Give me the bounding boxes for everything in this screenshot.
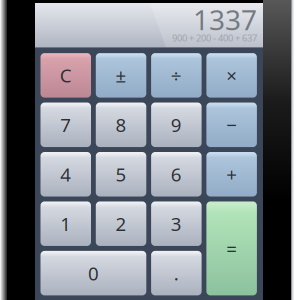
staticText: C	[60, 63, 72, 88]
button[interactable]: +	[206, 152, 257, 196]
staticText: .	[174, 261, 179, 286]
button[interactable]: 1	[40, 201, 91, 246]
button[interactable]: 8	[96, 103, 146, 147]
staticText: 5	[115, 162, 126, 187]
button[interactable]: 2	[96, 201, 146, 246]
button[interactable]: 6	[151, 152, 202, 196]
staticText: 900 + 200 - 400 + 637	[172, 32, 257, 44]
staticText: −	[226, 112, 237, 137]
staticText: 1337	[193, 1, 257, 38]
button[interactable]: ±	[96, 53, 146, 98]
staticText: 0	[88, 261, 99, 286]
button[interactable]: ×	[206, 53, 257, 98]
button[interactable]: =	[206, 201, 257, 295]
staticText: +	[226, 162, 237, 187]
button[interactable]: −	[206, 103, 257, 147]
staticText: 4	[60, 162, 71, 187]
staticText: 2	[115, 211, 126, 236]
button[interactable]: 5	[96, 152, 146, 196]
staticText: 3	[171, 211, 182, 236]
button[interactable]: C	[40, 53, 91, 98]
staticText: 9	[171, 112, 182, 137]
button[interactable]: 4	[40, 152, 91, 196]
staticText: 1	[60, 211, 71, 236]
button[interactable]: ÷	[151, 53, 202, 98]
button[interactable]: 3	[151, 201, 202, 246]
staticText: 7	[60, 112, 71, 137]
button[interactable]: .	[151, 251, 202, 295]
button[interactable]: 0	[40, 251, 146, 295]
staticText: ÷	[171, 63, 182, 88]
staticText: ±	[115, 63, 126, 88]
staticText: 8	[115, 112, 126, 137]
button[interactable]: 7	[40, 103, 91, 147]
staticText: 6	[171, 162, 182, 187]
staticText: =	[226, 236, 237, 261]
staticText: ×	[226, 63, 237, 88]
button[interactable]: 9	[151, 103, 202, 147]
